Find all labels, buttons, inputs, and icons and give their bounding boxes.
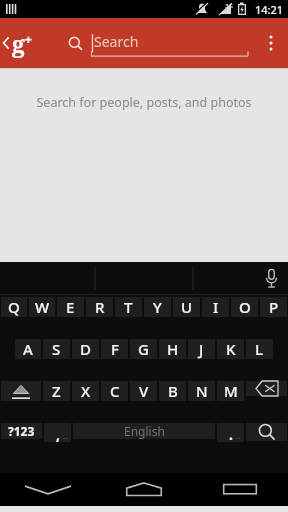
staticText: X [81, 381, 91, 401]
staticText: O [239, 297, 251, 317]
staticText: P [269, 297, 279, 317]
button[interactable]: V [130, 381, 157, 401]
button[interactable]: . [217, 423, 244, 442]
staticText: D [80, 339, 91, 359]
button[interactable]: Z [43, 381, 70, 401]
staticText: ?123 [8, 423, 35, 439]
button[interactable]: Shift [1, 381, 41, 401]
button[interactable]: K [217, 339, 244, 359]
button[interactable]: X [72, 381, 99, 401]
button[interactable]: Search [246, 423, 287, 441]
button[interactable]: D [72, 339, 99, 359]
staticText: English [124, 423, 165, 439]
staticText: … [62, 432, 68, 442]
staticText: Y [153, 297, 162, 317]
staticText: S [52, 339, 61, 359]
button[interactable]: I [202, 297, 229, 317]
staticText: V [139, 381, 149, 401]
button[interactable]: Navigate up, Google Plus [0, 18, 56, 68]
button[interactable]: U [173, 297, 200, 317]
button[interactable]: P [260, 297, 287, 317]
staticText: L [255, 339, 264, 359]
staticText: M [224, 381, 238, 401]
staticText: K [226, 339, 236, 359]
staticText: Q [8, 297, 20, 317]
button[interactable]: Recent apps [192, 473, 288, 506]
button[interactable]: B [159, 381, 186, 401]
button[interactable]: Voice input [254, 262, 288, 295]
staticText: 3G [225, 2, 233, 10]
staticText: U [181, 297, 193, 317]
staticText: … [235, 432, 241, 442]
staticText: Search for people, posts, and photos [0, 94, 288, 111]
button[interactable]: J [188, 339, 215, 359]
staticText: g [12, 28, 25, 59]
button[interactable]: G [130, 339, 157, 359]
staticText: H [167, 339, 179, 359]
button[interactable]: T [115, 297, 142, 317]
staticText: , [56, 425, 60, 444]
button[interactable]: Search [60, 28, 90, 58]
button[interactable]: Search [90, 25, 250, 65]
button[interactable]: ?123 [1, 423, 42, 439]
button[interactable]: English [73, 423, 215, 439]
button[interactable]: , [44, 423, 71, 442]
staticText: B [168, 381, 178, 401]
button[interactable]: Backspace [246, 381, 287, 396]
staticText: N [196, 381, 208, 401]
button[interactable]: N [188, 381, 215, 401]
staticText: R [95, 297, 105, 317]
button[interactable]: A [15, 339, 41, 359]
button[interactable]: O [231, 297, 258, 317]
button[interactable]: E [57, 297, 84, 317]
button[interactable]: R [86, 297, 113, 317]
staticText: 14:21 [255, 2, 284, 17]
button[interactable]: F [101, 339, 128, 359]
button[interactable]: Q [1, 297, 27, 317]
staticText: I [213, 297, 219, 317]
button[interactable]: C [101, 381, 128, 401]
staticText: . [229, 425, 233, 444]
button[interactable]: H [159, 339, 186, 359]
staticText: C [110, 381, 120, 401]
staticText: A [23, 339, 33, 359]
button[interactable]: L [246, 339, 273, 359]
button[interactable]: S [43, 339, 70, 359]
staticText: Search [94, 32, 139, 51]
staticText: Z [52, 381, 61, 401]
button[interactable]: Y [144, 297, 171, 317]
button[interactable]: More options [254, 18, 288, 68]
button[interactable]: M [217, 381, 244, 401]
staticText: J [199, 339, 204, 359]
staticText: W [35, 297, 50, 317]
staticText: G [138, 339, 149, 359]
staticText: F [111, 339, 119, 359]
button[interactable]: Back [0, 473, 96, 506]
button[interactable]: W [29, 297, 55, 317]
staticText: T [124, 297, 133, 317]
button[interactable]: Home [96, 473, 192, 506]
staticText: E [66, 297, 75, 317]
staticText: + [25, 31, 32, 47]
